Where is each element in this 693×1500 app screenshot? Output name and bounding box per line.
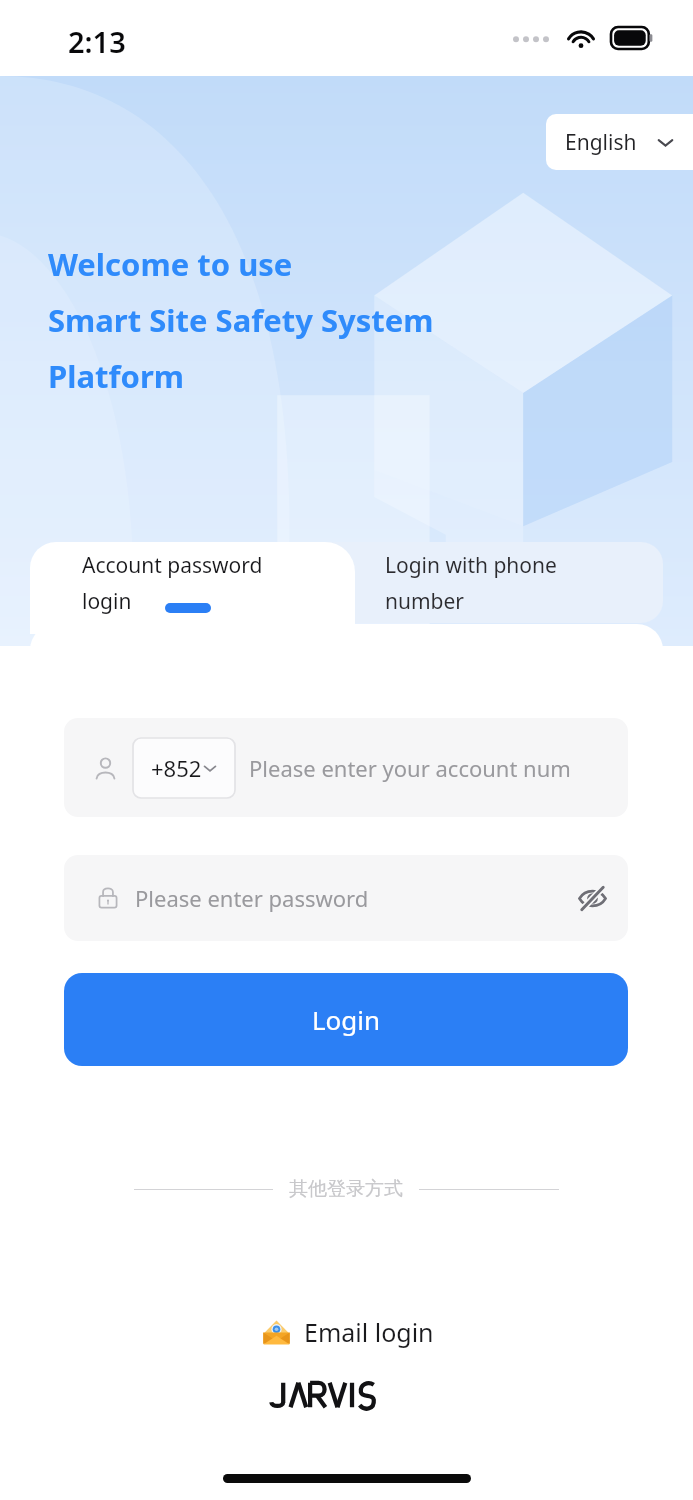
staticText: Please enter password <box>135 883 369 913</box>
staticText: Login <box>312 1002 381 1037</box>
staticText: 其他登录方式 <box>289 1177 403 1201</box>
button[interactable]: Login <box>64 973 628 1066</box>
button[interactable]: Email login <box>250 1310 444 1354</box>
staticText: Account password <box>82 551 263 580</box>
staticText: Welcome to use <box>48 243 293 285</box>
staticText: Email login <box>304 1315 434 1349</box>
staticText: Login with phone <box>385 551 557 580</box>
staticText: Platform <box>48 355 184 397</box>
button[interactable]: Login with phone <box>300 542 663 623</box>
staticText: Smart Site Safety System <box>48 299 434 341</box>
button[interactable]: English <box>546 114 693 170</box>
staticText: +852 <box>151 753 202 783</box>
staticText: 2:13 <box>68 22 126 61</box>
staticText: Please enter your account num <box>249 753 571 783</box>
staticText: English <box>565 128 637 157</box>
button[interactable]: Show password <box>566 872 618 924</box>
button[interactable]: Account password <box>30 542 355 634</box>
staticText: number <box>385 587 465 616</box>
staticText: login <box>82 587 132 616</box>
button[interactable]: Please enter password <box>64 855 628 941</box>
button[interactable]: +852 <box>64 718 628 817</box>
